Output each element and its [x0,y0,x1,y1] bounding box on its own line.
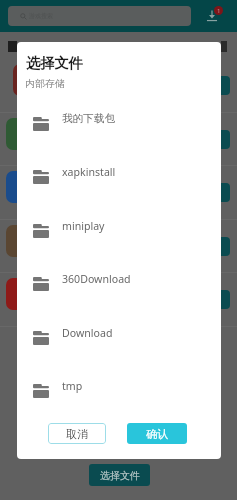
button[interactable] [192,290,230,309]
staticText: 1 [217,7,221,15]
staticText: 选择文件 [100,469,140,482]
button[interactable] [192,183,230,202]
button[interactable]: 360Download [17,269,221,299]
staticText: tmp [62,379,83,393]
staticText: 内部存储 [25,77,65,90]
staticText: xapkinstall [62,165,116,179]
button[interactable] [192,130,230,149]
button[interactable]: 选择文件 [89,464,150,486]
button[interactable]: Downloads [204,4,226,26]
staticText: 360Download [62,272,131,286]
button[interactable] [192,76,230,95]
button[interactable]: 我的下载包 [17,109,221,139]
button[interactable]: xapkinstall [17,162,221,192]
staticText: 我的下载包 [62,112,115,125]
staticText: Download [62,326,113,340]
button[interactable]: 确认 [127,423,187,444]
staticText: miniplay [62,219,105,233]
button[interactable]: 取消 [48,423,106,444]
button[interactable] [192,237,230,256]
button[interactable]: Download [17,323,221,353]
staticText: 确认 [146,427,168,441]
button[interactable]: tmp [17,376,221,406]
staticText: 选择文件 [26,54,83,72]
staticText: 取消 [66,427,88,441]
button[interactable]: 游戏搜索 [8,6,191,26]
button[interactable]: miniplay [17,216,221,246]
